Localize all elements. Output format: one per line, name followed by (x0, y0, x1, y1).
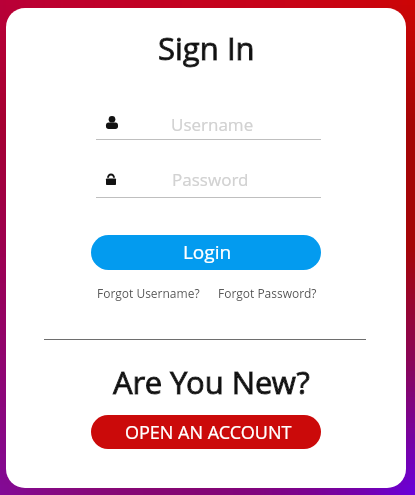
staticText: Are You New? (113, 361, 310, 403)
staticText: OPEN AN ACCOUNT (125, 420, 292, 445)
staticText: Username (171, 113, 254, 136)
button[interactable]: Login (91, 235, 321, 270)
other: Password (106, 174, 116, 185)
staticText: Sign In (158, 27, 255, 69)
staticText: Are You New? (113, 361, 310, 403)
staticText: Sign In (158, 27, 255, 69)
other: Username (106, 116, 118, 129)
button[interactable]: OPEN AN ACCOUNT (91, 415, 321, 449)
button[interactable]: Forgot Username? (95, 283, 202, 303)
staticText: Password (172, 168, 249, 191)
staticText: Forgot Username? (97, 285, 200, 301)
button[interactable]: Username (96, 110, 321, 140)
button[interactable]: Password (96, 168, 321, 198)
button[interactable]: Forgot Password? (216, 283, 319, 303)
staticText: Login (183, 239, 232, 265)
staticText: Forgot Password? (218, 285, 317, 301)
